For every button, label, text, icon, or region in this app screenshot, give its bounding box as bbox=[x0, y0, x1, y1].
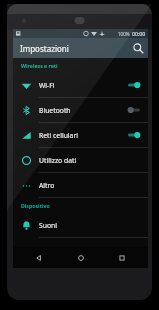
button[interactable]: Cerca bbox=[128, 38, 148, 58]
button[interactable]: Utilizzo dati bbox=[13, 148, 148, 172]
button[interactable]: Panoramica bbox=[107, 247, 137, 268]
staticText: Suoni bbox=[39, 221, 148, 230]
staticText: Utilizzo dati bbox=[39, 156, 148, 165]
staticText: Altro bbox=[39, 181, 148, 190]
button[interactable]: Wi-Fi bbox=[13, 73, 148, 97]
button[interactable]: Home bbox=[66, 247, 96, 268]
staticText: Wi-Fi bbox=[39, 81, 127, 90]
button[interactable]: Reti cellulari bbox=[13, 123, 148, 147]
staticText: Bluetooth bbox=[39, 106, 127, 115]
staticText: Impostazioni bbox=[20, 43, 69, 54]
staticText: 00:00 bbox=[132, 30, 146, 37]
button[interactable]: Wi-Fi toggle bbox=[127, 80, 141, 90]
button[interactable]: Suoni bbox=[13, 213, 148, 237]
button[interactable]: Altro bbox=[13, 173, 148, 197]
button[interactable]: Indietro bbox=[24, 247, 54, 268]
staticText: Wireless e reti bbox=[21, 62, 58, 69]
staticText: Dispositivo bbox=[21, 202, 50, 209]
button[interactable]: Bluetooth bbox=[13, 98, 148, 122]
staticText: 100% bbox=[118, 31, 130, 37]
button[interactable]: Reti cellulari toggle bbox=[127, 130, 141, 140]
button[interactable]: Bluetooth toggle bbox=[127, 105, 141, 115]
staticText: Reti cellulari bbox=[39, 131, 127, 140]
